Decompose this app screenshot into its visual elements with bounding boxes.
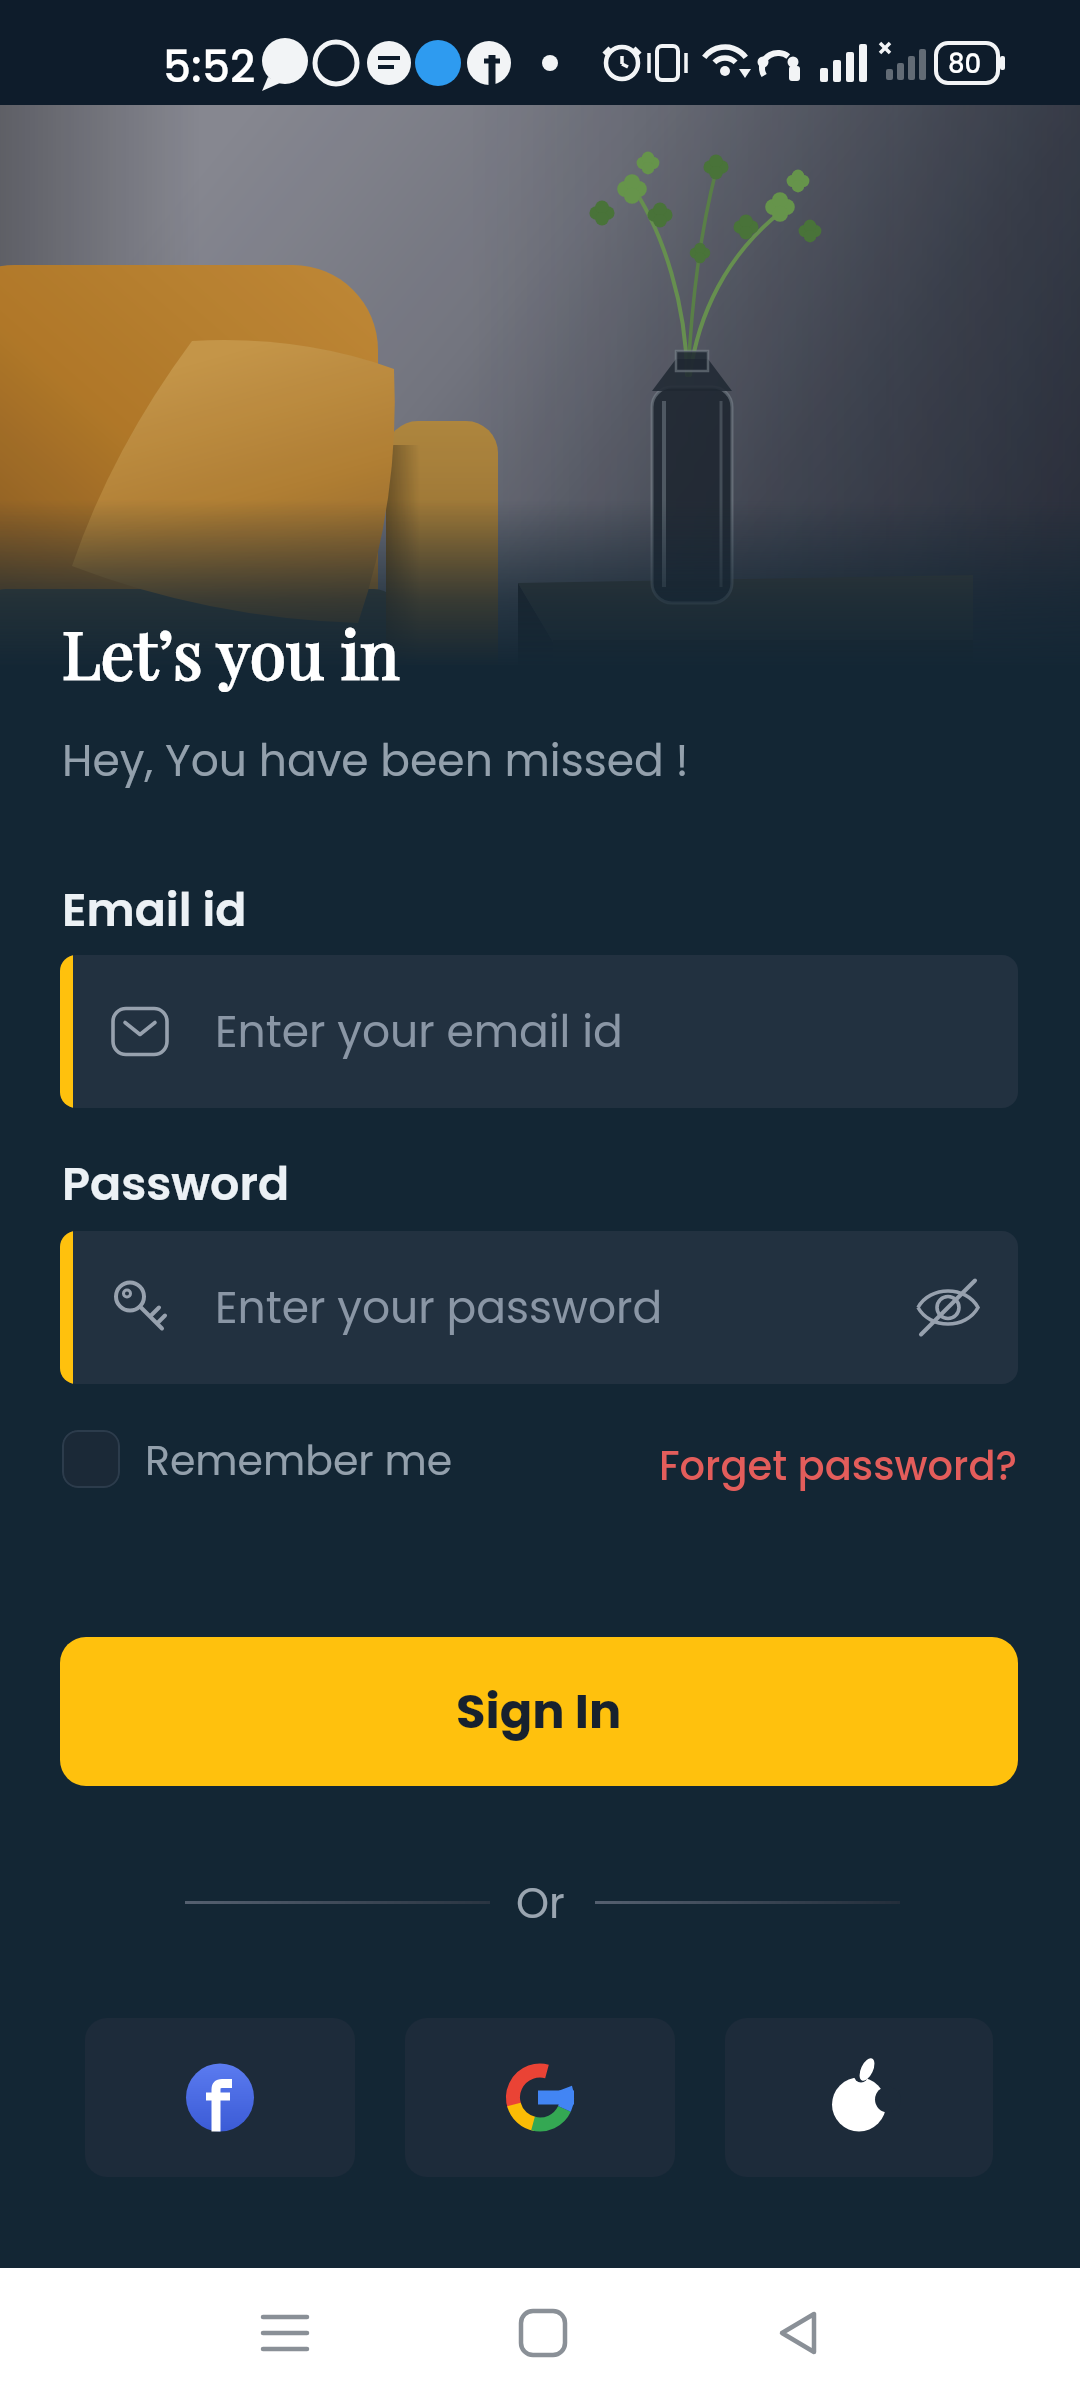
button[interactable] <box>360 2268 720 2400</box>
staticText: Enter your email id <box>215 1001 623 1063</box>
button[interactable]: Forget password? <box>659 1438 1018 1494</box>
button[interactable] <box>0 2268 360 2400</box>
staticText: Remember me <box>145 1432 453 1489</box>
staticText: Enter your password <box>215 1277 663 1339</box>
staticText: Password <box>62 1152 290 1216</box>
button[interactable] <box>85 2018 355 2177</box>
staticText: 80 <box>948 46 982 82</box>
button[interactable] <box>62 1430 120 1488</box>
staticText: Let’s you in <box>62 608 400 696</box>
staticText: Sign In <box>456 1678 622 1745</box>
button[interactable]: Enter your password <box>60 1231 1018 1384</box>
staticText: Or <box>516 1874 565 1933</box>
button[interactable] <box>725 2018 993 2177</box>
button[interactable]: Enter your email id <box>60 955 1018 1108</box>
button[interactable] <box>720 2268 1080 2400</box>
button[interactable]: Sign In <box>60 1637 1018 1786</box>
staticText: 5:52 <box>163 36 256 98</box>
staticText: Email id <box>62 878 247 942</box>
staticText: Hey, You have been missed ! <box>62 730 689 792</box>
button[interactable] <box>405 2018 675 2177</box>
